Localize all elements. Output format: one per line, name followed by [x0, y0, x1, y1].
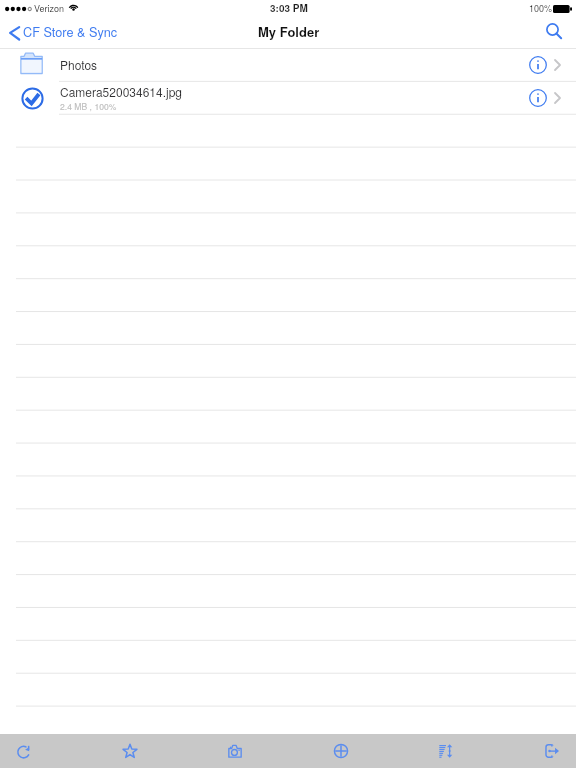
button[interactable]: Add — [327, 737, 355, 765]
button[interactable]: Info — [525, 52, 551, 78]
staticText: CF Store & Sync — [23, 22, 118, 40]
button[interactable]: CF Store & Sync — [0, 20, 126, 46]
staticText: Verizon — [34, 2, 65, 15]
staticText: My Folder — [258, 22, 320, 41]
staticText: 100% — [529, 2, 553, 15]
staticText: 3:03 PM — [270, 1, 308, 15]
button[interactable]: Refresh — [10, 737, 38, 765]
staticText: Camera520034614.jpg — [60, 83, 183, 100]
staticText: Photos — [60, 56, 98, 73]
button[interactable]: Favorites — [116, 737, 144, 765]
button[interactable]: Camera — [221, 737, 249, 765]
staticText: 2.4 MB , 100% — [60, 100, 117, 112]
button[interactable]: Sort — [432, 737, 460, 765]
button[interactable]: Photos — [0, 48, 576, 81]
button[interactable]: Export — [538, 737, 566, 765]
button[interactable]: Search — [539, 17, 569, 45]
button[interactable]: Info — [525, 85, 551, 111]
button[interactable]: Camera520034614.jpg — [0, 81, 576, 114]
